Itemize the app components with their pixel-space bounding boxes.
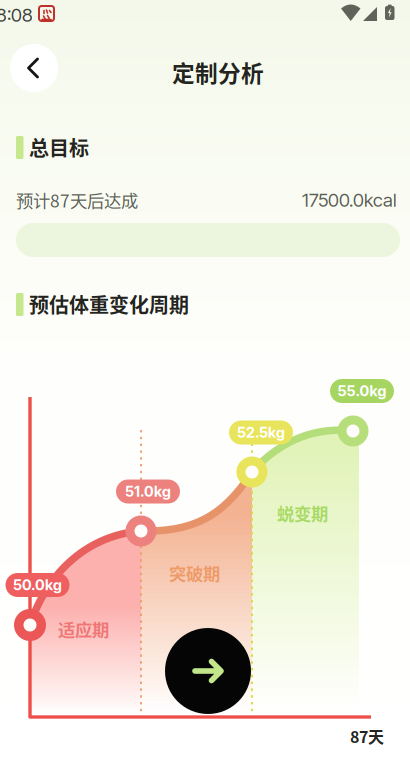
staticText: 87天: [350, 724, 384, 748]
staticText: 突破期: [169, 560, 220, 586]
staticText: 8:08: [0, 4, 33, 26]
staticText: 预计87天后达成: [16, 187, 138, 213]
staticText: 17500.0kcal: [302, 189, 397, 211]
staticText: 适应期: [58, 616, 109, 642]
staticText: 总目标: [29, 132, 89, 161]
button[interactable]: Next: [165, 628, 251, 714]
staticText: 蜕变期: [277, 500, 328, 526]
staticText: 定制分析: [172, 56, 264, 88]
button[interactable]: Back: [10, 44, 58, 92]
staticText: 50.0kg: [13, 576, 62, 594]
staticText: 预估体重变化周期: [29, 289, 189, 318]
staticText: 51.0kg: [125, 483, 171, 500]
staticText: 52.5kg: [237, 424, 285, 441]
staticText: 55.0kg: [337, 382, 386, 400]
